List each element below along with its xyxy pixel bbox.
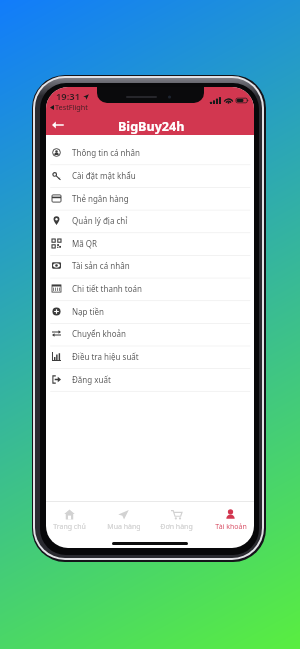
staticText: Tài khoản	[215, 522, 247, 532]
button[interactable]: Điều tra hiệu suất	[46, 345, 254, 368]
staticText: Chi tiết thanh toán	[72, 283, 143, 294]
button[interactable]: Mã QR	[46, 232, 254, 255]
staticText: Tài sản cá nhân	[72, 260, 130, 271]
button[interactable]: Đăng xuất	[46, 368, 254, 391]
button[interactable]: Mua hàng	[100, 509, 147, 532]
button[interactable]: Tài khoản	[207, 509, 254, 532]
button[interactable]: Back	[47, 114, 69, 135]
staticText: Mã QR	[72, 238, 98, 249]
staticText: 19:31	[56, 90, 81, 103]
button[interactable]: Chuyển khoản	[46, 322, 254, 345]
staticText: Đơn hàng	[160, 522, 193, 532]
button[interactable]: Đơn hàng	[153, 509, 200, 532]
staticText: Nạp tiền	[72, 306, 104, 317]
staticText: Thẻ ngân hàng	[72, 193, 129, 204]
button[interactable]: Chi tiết thanh toán	[46, 277, 254, 300]
staticText: Điều tra hiệu suất	[72, 351, 139, 362]
button[interactable]: Thông tin cá nhân	[46, 141, 254, 164]
staticText: TestFlight	[55, 102, 88, 112]
button[interactable]: Thẻ ngân hàng	[46, 187, 254, 210]
staticText: Trang chủ	[53, 522, 86, 532]
button[interactable]: Cài đặt mật khẩu	[46, 164, 254, 187]
button[interactable]: Nạp tiền	[46, 300, 254, 323]
button[interactable]: Quản lý địa chỉ	[46, 209, 254, 232]
button[interactable]: Tài sản cá nhân	[46, 254, 254, 277]
staticText: Cài đặt mật khẩu	[72, 170, 136, 181]
staticText: Đăng xuất	[72, 374, 111, 385]
staticText: Thông tin cá nhân	[72, 147, 140, 158]
button[interactable]: Trang chủ	[46, 509, 93, 532]
staticText: Mua hàng	[107, 522, 141, 532]
staticText: Chuyển khoản	[72, 328, 127, 339]
staticText: BigBuy24h	[118, 118, 185, 135]
staticText: Quản lý địa chỉ	[72, 215, 128, 226]
